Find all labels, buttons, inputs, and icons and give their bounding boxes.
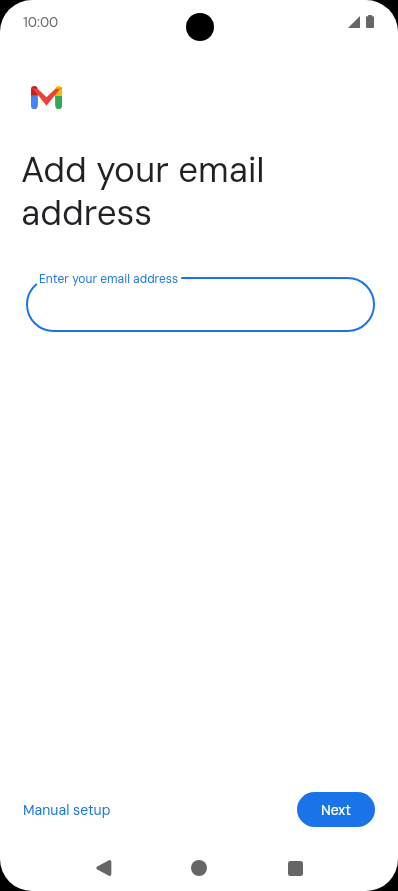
button[interactable]: Enter your email address (27, 277, 374, 332)
staticText: Next (321, 801, 351, 819)
staticText: Enter your email address (39, 271, 179, 287)
button[interactable]: Home (175, 844, 223, 891)
staticText: 10:00 (23, 13, 59, 31)
staticText: Manual setup (23, 801, 111, 819)
staticText: Add your email address (21, 147, 265, 236)
button[interactable]: Next (297, 792, 375, 827)
button[interactable]: Recent apps (271, 844, 319, 891)
button[interactable]: Back (79, 844, 127, 891)
button[interactable]: Manual setup (11, 792, 123, 828)
